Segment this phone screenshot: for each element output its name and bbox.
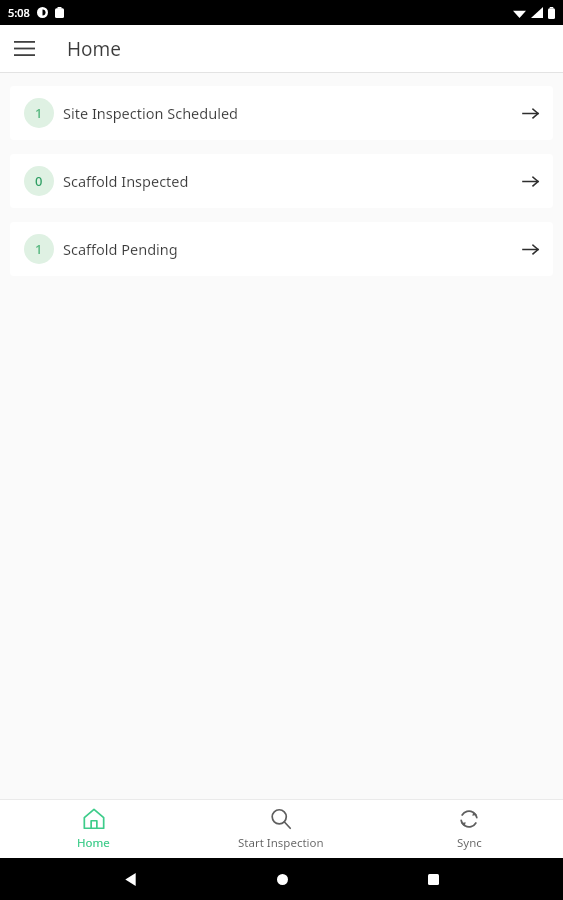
- staticText: 0: [35, 172, 43, 190]
- staticText: 1: [35, 240, 43, 258]
- staticText: 1: [35, 104, 43, 122]
- button[interactable]: Sync: [375, 800, 563, 858]
- staticText: Site Inspection Scheduled: [63, 103, 239, 123]
- button[interactable]: 1: [10, 86, 553, 140]
- staticText: 5:08: [8, 5, 30, 20]
- button[interactable]: Start Inspection: [187, 800, 375, 858]
- button[interactable]: 0: [10, 154, 553, 208]
- button[interactable]: Open navigation menu: [0, 25, 48, 72]
- staticText: Start Inspection: [238, 835, 324, 851]
- staticText: Home: [67, 36, 122, 62]
- button[interactable]: Home: [0, 800, 187, 858]
- staticText: Scaffold Pending: [63, 239, 178, 259]
- button[interactable]: Back: [108, 858, 152, 900]
- staticText: Scaffold Inspected: [63, 171, 189, 191]
- button[interactable]: Recent apps: [411, 858, 455, 900]
- staticText: Home: [77, 835, 110, 851]
- button[interactable]: 1: [10, 222, 553, 276]
- staticText: Sync: [457, 835, 482, 851]
- button[interactable]: Home: [260, 858, 304, 900]
